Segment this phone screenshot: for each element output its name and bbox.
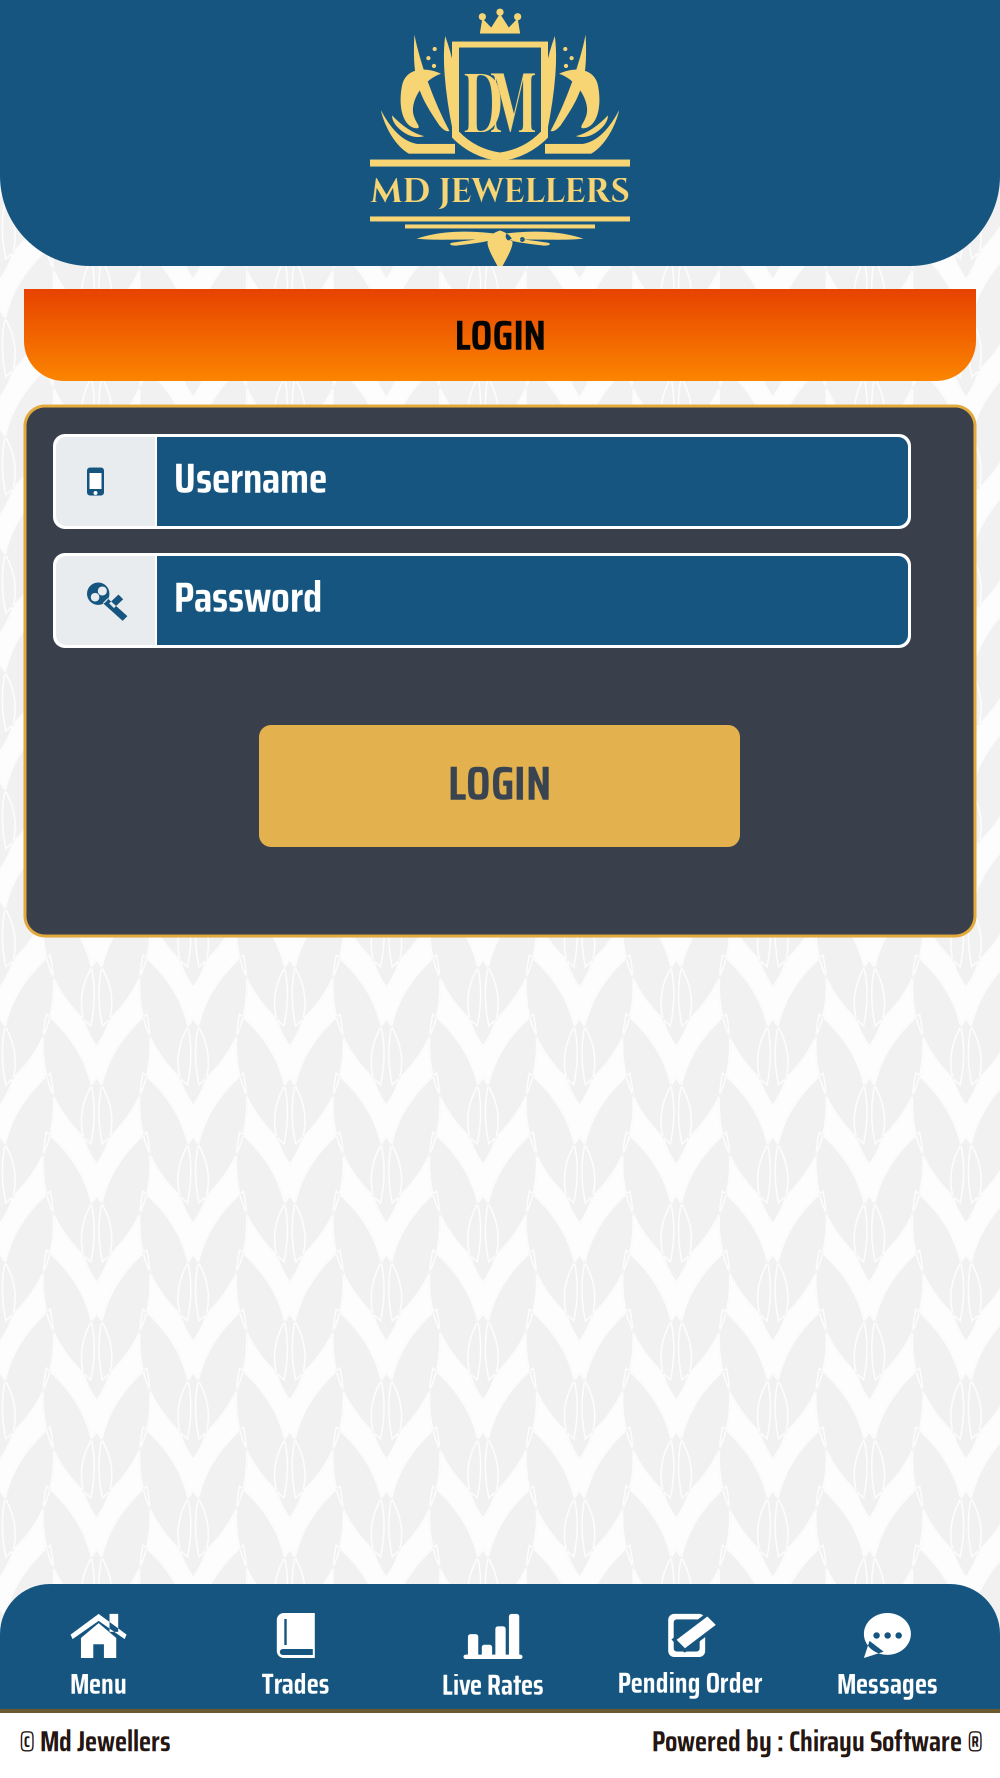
staticText: Messages (837, 1662, 938, 1706)
button[interactable]: Messages (789, 1584, 986, 1709)
button[interactable]: Menu (0, 1584, 197, 1709)
button[interactable]: Live Rates (394, 1584, 592, 1709)
button[interactable]: Pending Order (592, 1584, 789, 1709)
staticText: Username (174, 444, 327, 512)
staticText: Live Rates (442, 1663, 544, 1707)
button[interactable]: Trades (197, 1584, 394, 1709)
button[interactable]: LOGIN (259, 725, 740, 847)
staticText: LOGIN (454, 301, 545, 369)
staticText: Powered by : Chirayu Software ® (652, 1719, 983, 1764)
button[interactable]: Password (53, 553, 911, 648)
staticText: Trades (262, 1662, 330, 1706)
staticText: © Md Jewellers (19, 1719, 171, 1764)
staticText: M (482, 42, 559, 153)
staticText: Password (174, 563, 322, 631)
staticText: Menu (70, 1662, 127, 1706)
button[interactable]: Username (53, 434, 911, 529)
staticText: Pending Order (618, 1661, 763, 1705)
button[interactable]: LOGIN (0, 289, 1000, 381)
staticText: LOGIN (448, 745, 551, 821)
staticText: D (440, 42, 504, 153)
staticText: MD JEWELLERS (370, 169, 629, 214)
